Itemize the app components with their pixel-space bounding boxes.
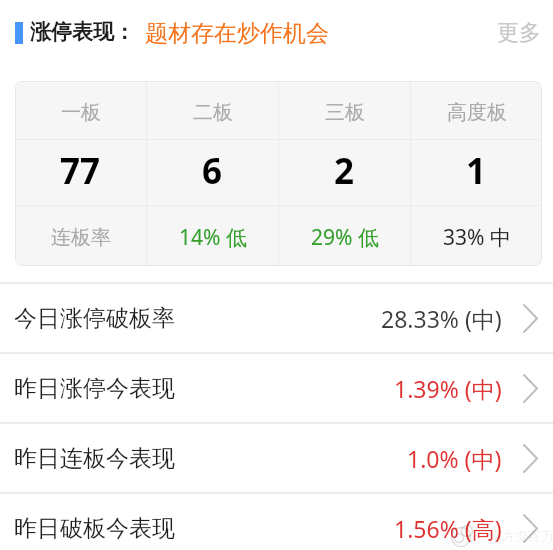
button[interactable]: 今日涨停破板率 bbox=[0, 284, 553, 352]
staticText: 南方变百万 bbox=[489, 528, 553, 544]
staticText: 33% 中 bbox=[443, 223, 511, 252]
staticText: 14% 低 bbox=[179, 223, 247, 252]
staticText: 1.0% (中) bbox=[407, 443, 502, 474]
staticText: 6 bbox=[202, 147, 223, 195]
button[interactable]: 昨日涨停今表现 bbox=[0, 354, 553, 422]
staticText: 一板 bbox=[61, 100, 101, 125]
staticText: 二板 bbox=[193, 100, 233, 125]
staticText: 1.39% (中) bbox=[394, 373, 502, 404]
staticText: 1 bbox=[466, 147, 487, 195]
staticText: 28.33% (中) bbox=[381, 303, 502, 334]
staticText: 29% 低 bbox=[311, 223, 379, 252]
button[interactable]: 昨日破板今表现 bbox=[0, 494, 553, 550]
other: 查看详情 bbox=[523, 514, 538, 543]
other: 查看详情 bbox=[523, 304, 538, 333]
staticText: 涨停表现： bbox=[30, 19, 135, 45]
staticText: 昨日连板今表现 bbox=[14, 444, 175, 473]
staticText: 2 bbox=[334, 147, 355, 195]
other: 查看详情 bbox=[523, 444, 538, 473]
staticText: 更多 bbox=[497, 19, 541, 47]
staticText: 77 bbox=[60, 147, 101, 195]
other: 查看详情 bbox=[523, 374, 538, 403]
staticText: 连板率 bbox=[51, 225, 111, 250]
button[interactable]: 更多 bbox=[482, 5, 553, 57]
staticText: 昨日破板今表现 bbox=[14, 514, 175, 543]
staticText: 题材存在炒作机会 bbox=[145, 19, 329, 48]
staticText: 今日涨停破板率 bbox=[14, 304, 175, 333]
button[interactable]: 昨日连板今表现 bbox=[0, 424, 553, 492]
staticText: 昨日涨停今表现 bbox=[14, 374, 175, 403]
staticText: 三板 bbox=[325, 100, 365, 125]
staticText: 高度板 bbox=[447, 100, 507, 125]
staticText: 1.56% (高) bbox=[394, 513, 502, 544]
